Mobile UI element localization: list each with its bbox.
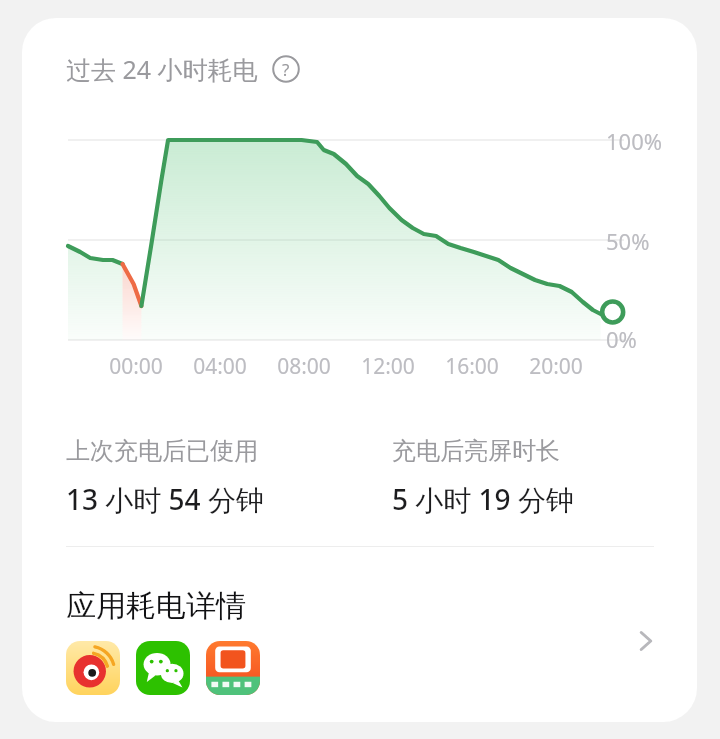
staticText: 过去 24 小时耗电 xyxy=(66,52,258,86)
button[interactable]: 应用耗电详情 xyxy=(22,566,697,716)
button[interactable]: Help xyxy=(272,55,300,83)
staticText: 应用耗电详情 xyxy=(66,587,246,625)
staticText: 0% xyxy=(606,324,637,354)
staticText: 13 小时 54 分钟 xyxy=(66,480,264,518)
staticText: 00:00 xyxy=(100,352,172,381)
staticText: 50% xyxy=(606,226,650,256)
staticText: 100% xyxy=(606,126,663,156)
staticText: 12:00 xyxy=(352,352,424,381)
staticText: 上次充电后已使用 xyxy=(66,436,258,466)
staticText: 5 小时 19 分钟 xyxy=(392,480,574,518)
staticText: ? xyxy=(282,58,290,81)
staticText: 20:00 xyxy=(520,352,592,381)
staticText: 充电后亮屏时长 xyxy=(392,436,560,466)
other: Open app battery details xyxy=(629,624,663,658)
staticText: 04:00 xyxy=(184,352,256,381)
staticText: 08:00 xyxy=(268,352,340,381)
staticText: 16:00 xyxy=(436,352,508,381)
